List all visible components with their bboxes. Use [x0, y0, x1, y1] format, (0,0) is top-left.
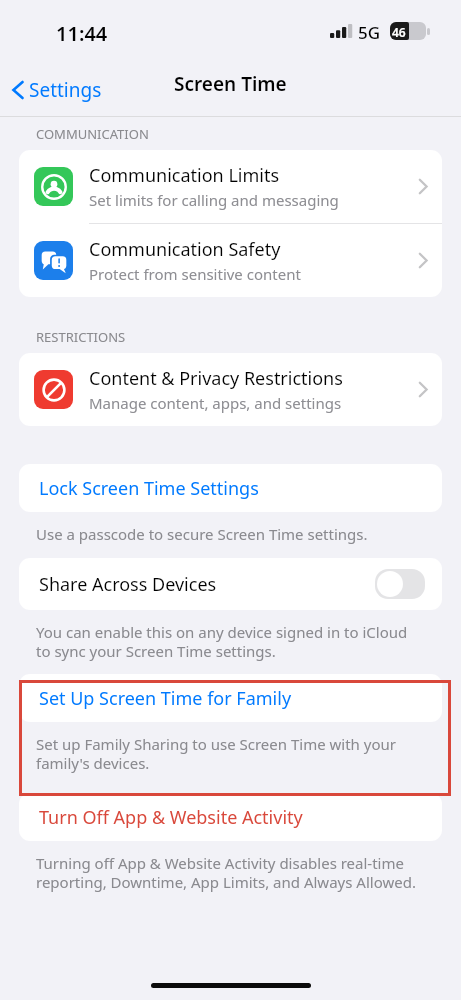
- button[interactable]: Communication Safety: [19, 224, 442, 297]
- staticText: Set limits for calling and messaging: [89, 190, 339, 210]
- button[interactable]: Share Across Devices: [19, 558, 442, 610]
- staticText: You can enable this on any device signed…: [36, 622, 408, 661]
- staticText: Communication Safety: [89, 237, 281, 262]
- staticText: Set up Family Sharing to use Screen Time…: [36, 734, 396, 773]
- staticText: Protect from sensitive content: [89, 264, 301, 284]
- staticText: Settings: [29, 77, 102, 103]
- staticText: Screen Time: [174, 71, 287, 97]
- staticText: 11:44: [56, 20, 108, 47]
- staticText: RESTRICTIONS: [36, 328, 126, 346]
- button[interactable]: Lock Screen Time Settings: [19, 464, 442, 512]
- button[interactable]: Turn Off App & Website Activity: [19, 793, 442, 841]
- staticText: Manage content, apps, and settings: [89, 393, 342, 413]
- staticText: Lock Screen Time Settings: [39, 476, 259, 501]
- button[interactable]: Set Up Screen Time for Family: [19, 674, 442, 722]
- staticText: Communication Limits: [89, 163, 280, 188]
- button[interactable]: Settings: [8, 74, 106, 106]
- staticText: Content & Privacy Restrictions: [89, 366, 343, 391]
- staticText: Share Across Devices: [39, 572, 375, 597]
- staticText: Turn Off App & Website Activity: [39, 805, 303, 830]
- staticText: Use a passcode to secure Screen Time set…: [36, 524, 368, 544]
- button[interactable]: Content & Privacy Restrictions: [19, 353, 442, 426]
- staticText: COMMUNICATION: [36, 125, 149, 143]
- button[interactable]: Communication Limits: [19, 150, 442, 223]
- staticText: 46: [392, 24, 406, 40]
- staticText: 5G: [358, 21, 381, 44]
- staticText: Set Up Screen Time for Family: [39, 686, 292, 711]
- staticText: Turning off App & Website Activity disab…: [36, 853, 416, 892]
- other: Share Across Devices toggle, off: [375, 569, 425, 599]
